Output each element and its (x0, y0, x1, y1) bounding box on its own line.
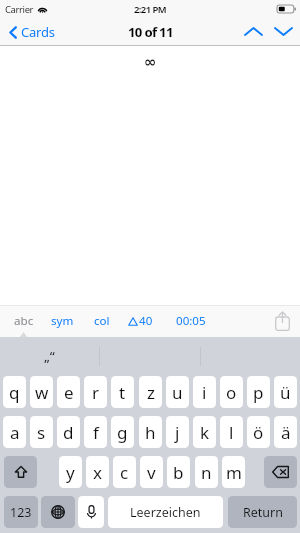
button[interactable]: d (57, 416, 80, 448)
staticText: Carrier (5, 3, 34, 16)
staticText: sym (51, 313, 74, 329)
staticText: Cards (21, 23, 55, 41)
button[interactable]: Switch keyboard (41, 496, 75, 528)
staticText: o (226, 381, 237, 404)
button[interactable]: b (167, 456, 190, 488)
staticText: z (147, 381, 155, 404)
button[interactable]: ü (274, 376, 297, 408)
staticText: w (35, 381, 49, 404)
button[interactable]: m (222, 456, 245, 488)
staticText: p (253, 381, 264, 404)
button[interactable]: ö (247, 416, 270, 448)
button[interactable]: h (139, 416, 162, 448)
button[interactable]: v (140, 456, 163, 488)
staticText: g (117, 421, 128, 444)
staticText: ä (281, 421, 291, 444)
staticText: l (229, 421, 234, 444)
button[interactable]: c (113, 456, 136, 488)
staticText: e (64, 381, 74, 404)
staticText: r (92, 381, 100, 404)
button[interactable]: i (193, 376, 216, 408)
staticText: col (94, 313, 110, 329)
button[interactable]: g (111, 416, 134, 448)
staticText: k (200, 421, 210, 444)
staticText: c (120, 461, 129, 484)
button[interactable]: 00:05 (173, 306, 209, 336)
staticText: 123 (10, 504, 32, 521)
button[interactable]: sym (45, 306, 80, 336)
staticText: „“ (44, 347, 55, 365)
staticText: d (63, 421, 74, 444)
staticText: i (202, 381, 207, 404)
button[interactable]: j (166, 416, 189, 448)
staticText: a (10, 421, 20, 444)
button[interactable]: Next card (268, 18, 298, 44)
button[interactable]: x (86, 456, 109, 488)
button[interactable]: 40 (125, 306, 156, 336)
staticText: t (119, 381, 126, 404)
button[interactable]: p (247, 376, 270, 408)
button[interactable]: abc (8, 306, 40, 336)
staticText: 2:21 PM (134, 3, 166, 16)
button[interactable]: q (3, 376, 26, 408)
staticText: s (37, 421, 46, 444)
staticText: 10 of 11 (128, 23, 173, 41)
button[interactable]: Cards (0, 18, 59, 46)
button[interactable]: Return (228, 496, 297, 528)
button[interactable]: y (59, 456, 82, 488)
staticText: x (93, 461, 102, 484)
button[interactable]: t (111, 376, 134, 408)
button[interactable]: ä (274, 416, 297, 448)
button[interactable]: k (193, 416, 216, 448)
button[interactable]: Backspace (264, 456, 297, 488)
button[interactable]: f (84, 416, 107, 448)
staticText: v (147, 461, 156, 484)
button[interactable]: Leerzeichen (108, 496, 223, 528)
button[interactable]: Shift (4, 456, 37, 488)
button[interactable]: z (139, 376, 162, 408)
staticText: y (66, 461, 75, 484)
button[interactable]: u (166, 376, 189, 408)
staticText: ü (280, 381, 291, 404)
button[interactable]: Dictation (78, 496, 104, 528)
staticText: Return (243, 504, 283, 521)
button[interactable]: „“ (0, 337, 99, 375)
staticText: b (173, 461, 184, 484)
button[interactable]: w (30, 376, 53, 408)
staticText: Leerzeichen (130, 504, 201, 521)
staticText: abc (14, 313, 34, 329)
staticText: q (9, 381, 20, 404)
button[interactable]: n (195, 456, 218, 488)
button[interactable]: l (220, 416, 243, 448)
staticText: ö (253, 421, 264, 444)
staticText: h (145, 421, 156, 444)
button[interactable]: r (84, 376, 107, 408)
button[interactable]: a (3, 416, 26, 448)
staticText: 40 (139, 313, 153, 329)
staticText: ∞ (144, 53, 157, 70)
button[interactable]: Share (270, 309, 294, 333)
staticText: n (201, 461, 212, 484)
button[interactable]: 123 (4, 496, 38, 528)
staticText: f (93, 421, 99, 444)
staticText: u (172, 381, 183, 404)
staticText: 00:05 (176, 313, 206, 329)
button[interactable]: o (220, 376, 243, 408)
button[interactable]: Previous card (238, 18, 268, 44)
button[interactable]: e (57, 376, 80, 408)
staticText: m (226, 461, 242, 484)
button[interactable]: col (88, 306, 116, 336)
button[interactable]: s (30, 416, 53, 448)
staticText: j (175, 421, 180, 444)
